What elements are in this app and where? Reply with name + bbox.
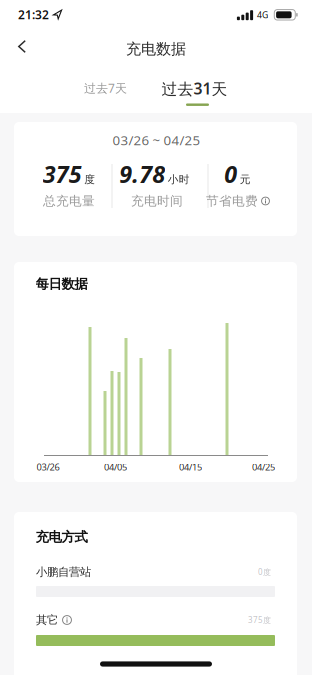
staticText: 9.78 xyxy=(119,158,165,189)
staticText: 04/05 xyxy=(104,461,127,473)
button[interactable]: Back xyxy=(0,30,40,63)
staticText: 度 xyxy=(84,173,95,186)
staticText: 总充电量 xyxy=(43,193,95,209)
staticText: 过去31天 xyxy=(161,78,227,99)
button[interactable]: Other charging info xyxy=(62,615,72,625)
staticText: 375 xyxy=(43,158,82,189)
staticText: 04/25 xyxy=(252,461,275,473)
staticText: 节省电费 xyxy=(206,193,258,209)
staticText: 0 xyxy=(224,158,237,189)
staticText: 0度 xyxy=(258,567,271,577)
staticText: 03/26 ~ 04/25 xyxy=(112,131,200,149)
staticText: 充电时间 xyxy=(131,193,183,209)
button[interactable]: 过去31天 xyxy=(157,74,231,106)
staticText: 小时 xyxy=(168,173,190,186)
staticText: 小鹏自营站 xyxy=(36,565,91,579)
staticText: 过去7天 xyxy=(84,80,127,96)
staticText: 21:32 xyxy=(18,6,49,22)
button[interactable]: 过去7天 xyxy=(78,74,133,102)
staticText: 04/15 xyxy=(179,461,202,473)
staticText: 充电方式 xyxy=(35,529,87,545)
staticText: 充电数据 xyxy=(126,40,186,58)
staticText: 其它 xyxy=(36,613,58,627)
staticText: 元 xyxy=(240,173,251,186)
staticText: 03/26 xyxy=(36,461,59,473)
staticText: 375度 xyxy=(248,615,271,625)
button[interactable]: Saved cost info xyxy=(261,196,270,205)
staticText: 4G xyxy=(257,9,268,20)
staticText: 每日数据 xyxy=(35,276,87,292)
